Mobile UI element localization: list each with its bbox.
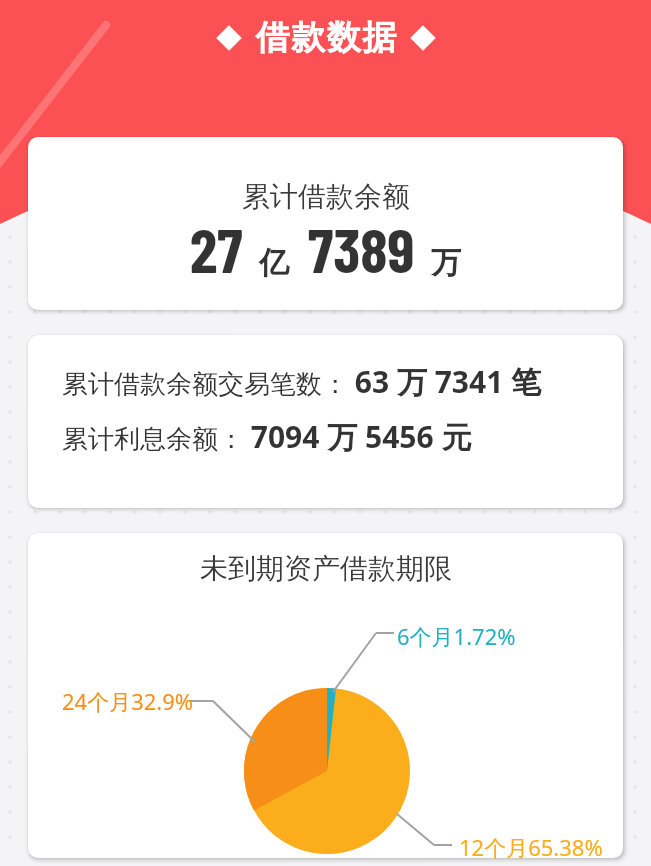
staticText: 6个月1.72% [397, 621, 516, 651]
staticText: 未到期资产借款期限 [200, 551, 452, 586]
button[interactable] [28, 137, 623, 310]
button[interactable] [28, 533, 623, 858]
staticText: 亿 [259, 244, 289, 282]
staticText: 7389 [308, 211, 415, 285]
staticText: 27 [190, 211, 243, 285]
staticText: 万 [431, 244, 461, 282]
staticText: 累计借款余额交易笔数： 63 万 7341 笔 [62, 361, 542, 402]
staticText: 累计利息余额： 7094 万 5456 元 [62, 416, 472, 457]
staticText: 累计借款余额 [242, 179, 410, 214]
staticText: 24个月32.9% [62, 686, 194, 716]
staticText: 借款数据 [255, 16, 397, 59]
staticText: 12个月65.38% [459, 832, 603, 862]
button[interactable] [28, 335, 623, 508]
